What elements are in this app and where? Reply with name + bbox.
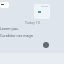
staticText: Curabitur nec magn [0,33,33,38]
button[interactable] [0,2,9,8]
button[interactable] [34,4,50,19]
staticText: Today 10 [25,20,40,25]
button[interactable]: Send [43,42,49,48]
staticText: Lorem ipsu [0,26,19,31]
